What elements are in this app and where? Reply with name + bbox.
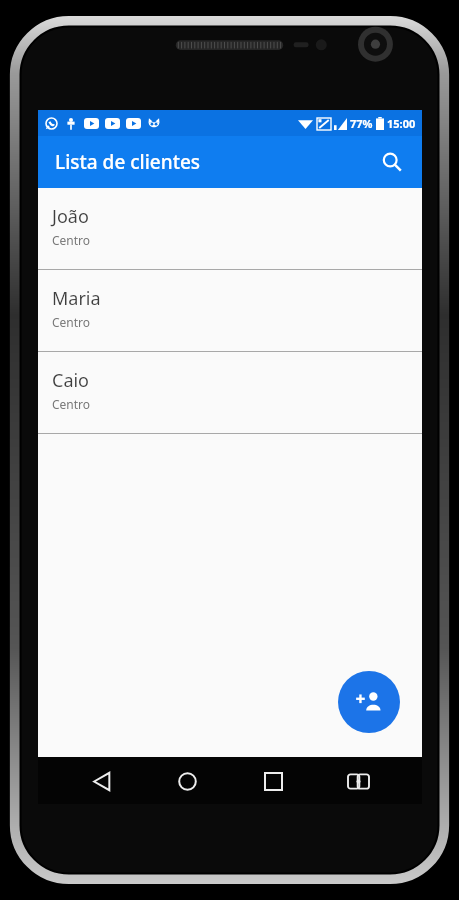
button[interactable]: Maria bbox=[38, 270, 422, 351]
staticText: 77% bbox=[350, 116, 373, 131]
staticText: João bbox=[52, 204, 89, 229]
staticText: Lista de clientes bbox=[55, 149, 201, 175]
button[interactable]: Voltar bbox=[80, 759, 124, 803]
staticText: Centro bbox=[52, 314, 91, 330]
staticText: Centro bbox=[52, 232, 91, 248]
button[interactable]: Caio bbox=[38, 352, 422, 433]
button[interactable]: Início bbox=[165, 759, 209, 803]
staticText: 15:00 bbox=[387, 116, 416, 131]
button[interactable]: João bbox=[38, 188, 422, 269]
button[interactable]: Pesquisar bbox=[372, 142, 412, 182]
button[interactable]: Captura de tela bbox=[336, 759, 380, 803]
staticText: Centro bbox=[52, 396, 91, 412]
staticText: Caio bbox=[52, 368, 90, 393]
button[interactable]: Adicionar cliente bbox=[338, 671, 400, 733]
staticText: Maria bbox=[52, 286, 101, 311]
button[interactable]: Recentes bbox=[251, 759, 295, 803]
